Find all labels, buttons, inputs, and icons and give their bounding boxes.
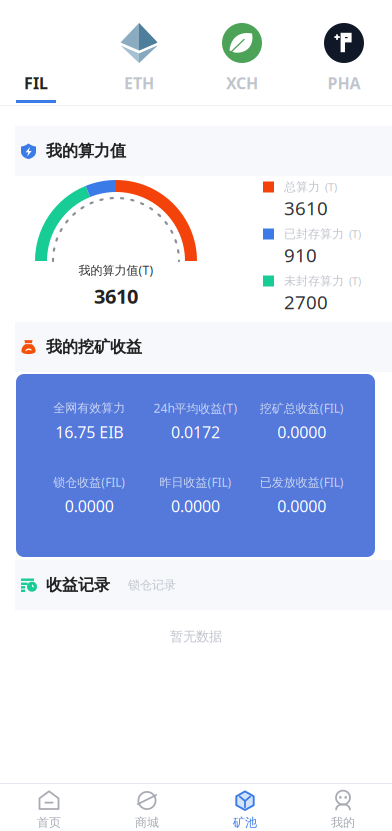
staticText: 矿池 (233, 815, 257, 830)
staticText: (T) (349, 274, 361, 288)
staticText: 0.0000 (277, 495, 326, 517)
staticText: 全网有效算力 (53, 401, 125, 415)
button[interactable]: 锁仓记录 (110, 568, 184, 602)
staticText: 未封存算力 (284, 274, 344, 288)
staticText: 2700 (284, 290, 328, 314)
staticText: 首页 (37, 815, 61, 830)
staticText: 0.0000 (65, 495, 114, 517)
staticText: 0.0000 (277, 421, 326, 443)
button[interactable]: PHA (311, 0, 377, 105)
staticText: 0.0000 (171, 495, 220, 517)
staticText: (T) (325, 180, 337, 194)
button[interactable]: XCH (209, 0, 275, 105)
staticText: (T) (349, 227, 361, 241)
staticText: XCH (226, 72, 258, 94)
button[interactable]: ETH (106, 0, 172, 105)
staticText: 3610 (94, 283, 138, 309)
staticText: 910 (284, 243, 317, 267)
staticText: 挖矿总收益(FIL) (260, 400, 344, 416)
staticText: 已发放收益(FIL) (260, 474, 344, 490)
staticText: 商城 (135, 815, 159, 830)
button[interactable]: 矿池 (196, 784, 294, 831)
button[interactable]: 我的 (294, 784, 392, 831)
staticText: FIL (24, 72, 48, 94)
staticText: 锁仓记录 (128, 578, 176, 592)
staticText: 总算力 (284, 180, 320, 194)
staticText: 24h平均收益(T) (153, 400, 237, 416)
staticText: 锁仓收益(FIL) (53, 474, 125, 490)
staticText: ETH (124, 72, 154, 94)
staticText: 0.0172 (171, 421, 220, 443)
staticText: 我的算力值 (46, 141, 126, 161)
staticText: 已封存算力 (284, 227, 344, 241)
button[interactable]: 商城 (98, 784, 196, 831)
staticText: 16.75 EIB (55, 421, 123, 443)
staticText: 收益记录 (46, 575, 110, 595)
button[interactable]: 首页 (0, 784, 98, 831)
staticText: 我的 (331, 815, 355, 830)
staticText: 我的算力值(T) (78, 262, 153, 278)
staticText: 昨日收益(FIL) (159, 474, 231, 490)
button[interactable]: FIL (3, 0, 69, 105)
staticText: 我的挖矿收益 (46, 337, 142, 357)
staticText: PHA (327, 72, 360, 94)
staticText: 3610 (284, 196, 328, 220)
staticText: 暂无数据 (170, 628, 222, 645)
